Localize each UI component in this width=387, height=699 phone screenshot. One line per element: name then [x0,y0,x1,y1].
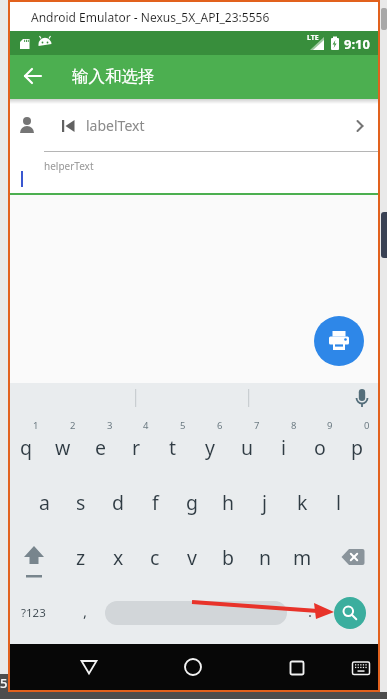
button[interactable]: m [278,533,326,581]
button[interactable]: i [260,423,308,471]
staticText: y [205,434,215,461]
staticText: 9:10 [344,35,370,53]
button[interactable]: , [61,587,109,635]
staticText: 1 [33,419,39,432]
button[interactable] [335,539,377,579]
staticText: 4 [143,419,149,432]
staticText: Android Emulator - Nexus_5X_API_23:5556 [31,9,270,25]
staticText: 0 [364,419,370,432]
staticText: n [259,544,272,571]
button[interactable]: y [186,423,234,471]
button[interactable]: u [223,423,271,471]
staticText: 9 [327,419,333,432]
staticText: l [336,489,342,516]
staticText: a [39,489,50,516]
staticText: q [20,434,32,461]
staticText: b [222,544,234,571]
staticText: labelText [86,116,145,135]
staticText: 输入和选择 [72,66,155,87]
button[interactable]: o [296,423,344,471]
button[interactable]: v [168,533,216,581]
button[interactable]: x [94,533,142,581]
button[interactable] [334,597,366,629]
staticText: r [132,434,141,461]
button[interactable]: k [278,478,326,526]
staticText: i [281,434,287,461]
button[interactable]: . [286,587,334,635]
staticText: f [152,489,159,516]
button[interactable] [16,539,56,579]
staticText: p [351,434,363,461]
button[interactable]: p [333,423,381,471]
staticText: g [186,489,198,516]
staticText: x [113,544,124,571]
button[interactable] [341,648,381,688]
button[interactable]: t [149,423,197,471]
button[interactable]: n [241,533,289,581]
staticText: 3 [107,419,113,432]
button[interactable] [17,60,49,92]
staticText: u [241,434,254,461]
button[interactable]: z [57,533,105,581]
button[interactable]: labelText [10,99,378,152]
button[interactable]: j [241,478,289,526]
button[interactable]: a [20,478,68,526]
button[interactable] [277,648,317,688]
button[interactable]: w [39,423,87,471]
staticText: . [308,601,313,621]
staticText: ?123 [21,605,46,621]
staticText: LTE [307,33,319,43]
button[interactable]: b [204,533,252,581]
staticText: m [293,544,312,571]
button[interactable]: c [131,533,179,581]
button[interactable]: f [131,478,179,526]
staticText: c [150,544,160,571]
button[interactable] [314,316,364,366]
staticText: d [112,489,124,516]
staticText: s [76,489,86,516]
button[interactable]: s [57,478,105,526]
button[interactable] [69,647,109,687]
button[interactable] [105,601,287,625]
button[interactable]: d [94,478,142,526]
button[interactable]: r [112,423,160,471]
staticText: 7 [254,419,260,432]
staticText: h [222,489,235,516]
button[interactable]: q [2,423,50,471]
staticText: k [297,489,308,516]
staticText: j [262,489,268,516]
button[interactable]: l [315,478,363,526]
button[interactable] [348,385,376,411]
button[interactable]: ?123 [9,589,57,637]
staticText: 5 [0,674,8,692]
staticText: z [76,544,86,571]
button[interactable] [173,647,213,687]
button[interactable]: h [204,478,252,526]
staticText: w [55,434,71,461]
button[interactable]: g [168,478,216,526]
staticText: v [187,544,197,571]
staticText: 6 [217,419,223,432]
staticText: 2 [70,419,76,432]
staticText: o [314,434,326,461]
staticText: 5 [180,419,186,432]
staticText: t [169,434,177,461]
staticText: , [83,601,88,621]
staticText: e [95,434,106,461]
button[interactable]: e [76,423,124,471]
staticText: helperText [44,159,94,173]
staticText: 8 [291,419,297,432]
